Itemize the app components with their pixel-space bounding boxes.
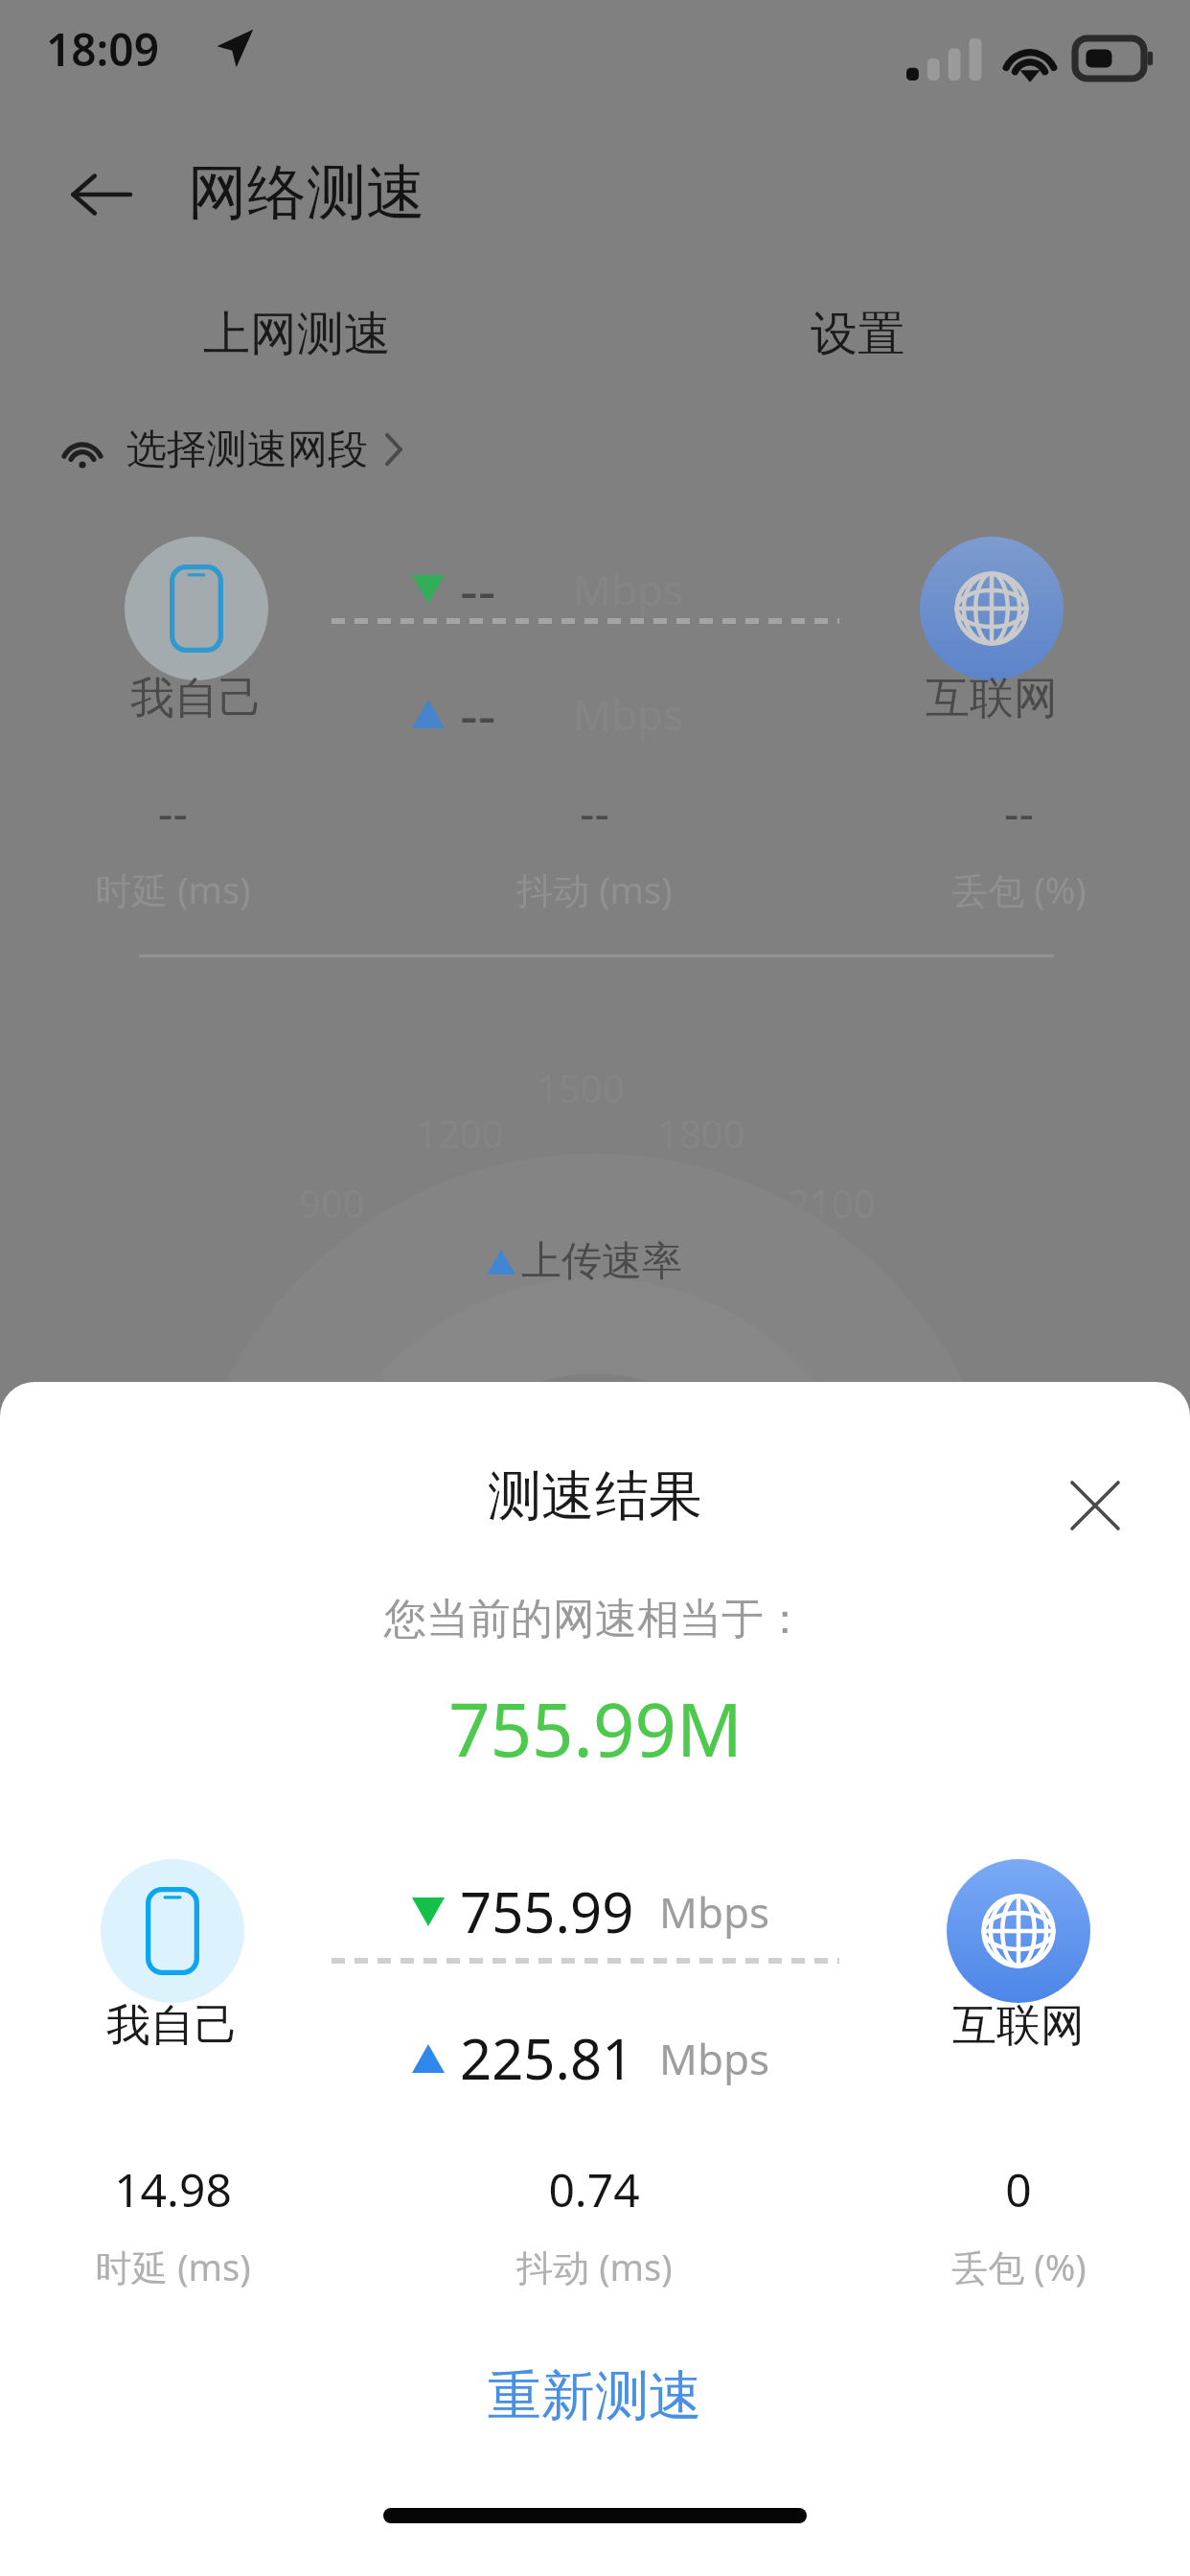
staticText: 网络测速 [188, 155, 425, 230]
staticText: -- [580, 781, 609, 843]
staticText: 14.98 [114, 2158, 232, 2220]
staticText: 我自己 [130, 671, 263, 726]
button[interactable]: 返回 [59, 153, 142, 236]
button[interactable]: 设置 [738, 287, 977, 381]
staticText: 我自己 [106, 1998, 239, 2054]
staticText: 时延 (ms) [95, 2242, 251, 2291]
button[interactable]: 关闭 [1042, 1453, 1148, 1558]
button[interactable]: 上网测速 [144, 287, 450, 381]
staticText: 755.99M [448, 1679, 743, 1779]
staticText: 选择测速网段 [126, 425, 368, 475]
staticText: 18:09 [46, 19, 159, 80]
staticText: 丢包 (%) [951, 2242, 1087, 2291]
button[interactable]: 重新测速 [403, 2338, 787, 2453]
staticText: 225.81 [460, 2020, 634, 2096]
staticText: -- [460, 551, 496, 627]
staticText: 抖动 (ms) [516, 864, 673, 914]
staticText: 上网测速 [203, 305, 391, 364]
staticText: 时延 (ms) [95, 864, 251, 914]
staticText: Mbps [659, 2030, 770, 2087]
staticText: 0.74 [548, 2158, 640, 2220]
staticText: -- [1004, 781, 1034, 843]
staticText: -- [158, 781, 188, 843]
staticText: 互联网 [926, 671, 1058, 726]
staticText: 上传速率 [521, 1236, 682, 1287]
staticText: -- [460, 676, 496, 751]
staticText: 设置 [811, 305, 904, 364]
staticText: 互联网 [952, 1998, 1085, 2054]
staticText: 0 [1005, 2158, 1032, 2220]
staticText: 丢包 (%) [951, 864, 1087, 914]
staticText: 抖动 (ms) [516, 2242, 673, 2291]
staticText: 测速结果 [488, 1462, 702, 1530]
staticText: Mbps [659, 1883, 770, 1941]
button[interactable]: 选择测速网段 [50, 414, 414, 485]
staticText: 重新测速 [488, 2362, 702, 2430]
staticText: 755.99 [460, 1874, 634, 1949]
staticText: 您当前的网速相当于： [384, 1593, 806, 1645]
